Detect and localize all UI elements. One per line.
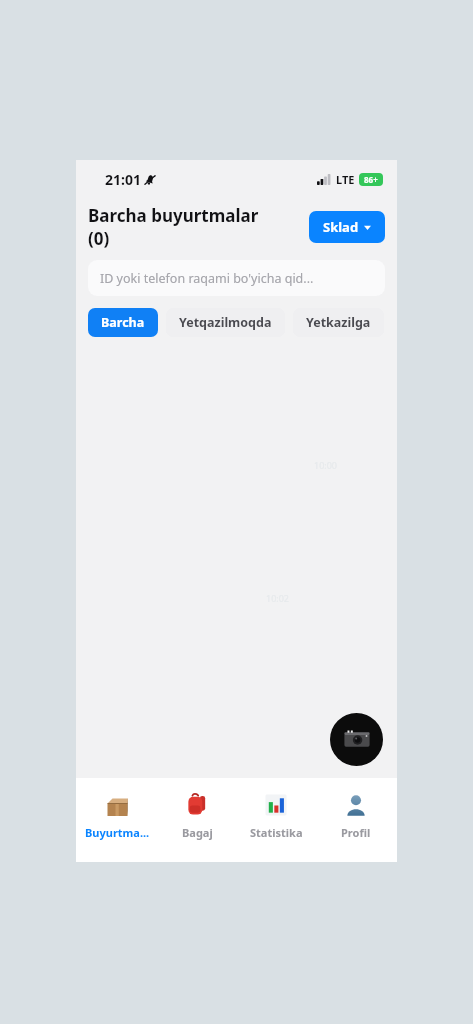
staticText: 21:01 bbox=[105, 170, 141, 189]
button[interactable]: ID yoki telefon raqami bo'yicha qid... bbox=[88, 260, 385, 296]
staticText: ID yoki telefon raqami bo'yicha qid... bbox=[100, 270, 314, 287]
staticText: 10:02 bbox=[266, 592, 290, 604]
staticText: Yetqazilmoqda bbox=[179, 314, 272, 331]
staticText: Sklad bbox=[323, 218, 359, 236]
button[interactable]: Yetqazilmoqda bbox=[166, 308, 285, 337]
staticText: Profil bbox=[341, 825, 371, 840]
staticText: 10:00 bbox=[314, 459, 338, 471]
staticText: LTE bbox=[336, 172, 355, 187]
staticText: Buyurtma... bbox=[85, 825, 150, 840]
staticText: 86+ bbox=[364, 174, 378, 185]
staticText: Bagaj bbox=[182, 825, 213, 840]
button[interactable]: Sklad bbox=[309, 211, 385, 243]
button[interactable]: Buyurtma... bbox=[79, 786, 155, 844]
button[interactable]: Camera bbox=[330, 713, 383, 766]
button[interactable]: Statistika bbox=[238, 786, 314, 844]
button[interactable]: Bagaj bbox=[159, 786, 235, 844]
staticText: Barcha bbox=[101, 314, 145, 331]
button[interactable]: Profil bbox=[318, 786, 394, 844]
staticText: (0) bbox=[88, 227, 110, 250]
staticText: Barcha buyurtmalar bbox=[88, 204, 259, 227]
button[interactable]: Yetkazilga bbox=[293, 308, 384, 337]
button[interactable]: Barcha bbox=[88, 308, 158, 337]
staticText: Statistika bbox=[250, 825, 303, 840]
staticText: Yetkazilga bbox=[306, 314, 371, 331]
